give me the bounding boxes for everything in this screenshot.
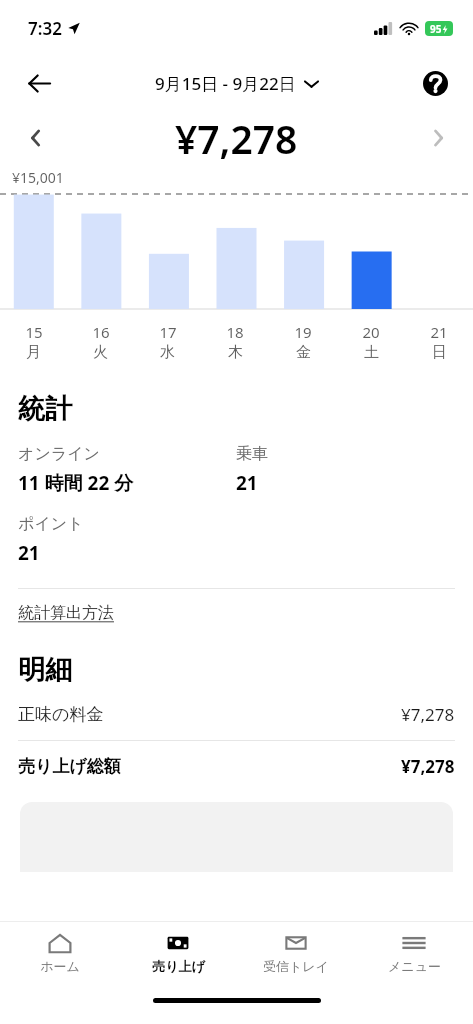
button[interactable]: 次の週 xyxy=(417,117,459,159)
staticText: 18 xyxy=(226,322,244,342)
staticText: 水 xyxy=(160,343,175,362)
staticText: 木 xyxy=(228,343,243,362)
button[interactable]: メニュー xyxy=(355,928,473,978)
staticText: 7:32 xyxy=(28,17,62,40)
staticText: 21 xyxy=(236,470,258,496)
staticText: 21 xyxy=(430,322,448,342)
staticText: 20 xyxy=(362,322,380,342)
button[interactable]: 統計算出方法 xyxy=(18,603,114,623)
button[interactable]: 戻る xyxy=(16,60,62,106)
button[interactable]: ホーム xyxy=(0,928,119,978)
staticText: ¥7,278 xyxy=(401,755,455,778)
staticText: 統計算出方法 xyxy=(18,603,114,623)
staticText: 売り上げ xyxy=(152,958,205,974)
staticText: ¥15,001 xyxy=(12,168,64,187)
staticText: 日 xyxy=(432,343,447,362)
staticText: 95 xyxy=(430,22,442,36)
button[interactable]: ヘルプ xyxy=(415,63,455,103)
staticText: オンライン xyxy=(18,444,100,464)
button[interactable]: 正味の料金 xyxy=(18,703,455,726)
staticText: 9月15日 - 9月22日 xyxy=(155,72,296,95)
staticText: ¥7,278 xyxy=(401,703,455,726)
staticText: 受信トレイ xyxy=(263,958,329,974)
staticText: 17 xyxy=(159,322,177,342)
staticText: 15 xyxy=(25,322,43,342)
staticText: ポイント xyxy=(18,514,84,534)
staticText: 土 xyxy=(364,343,379,362)
staticText: 11 時間 22 分 xyxy=(18,470,134,496)
staticText: ¥7,278 xyxy=(175,112,298,165)
staticText: 売り上げ総額 xyxy=(18,756,121,777)
staticText: 統計 xyxy=(18,392,72,426)
staticText: ホーム xyxy=(40,958,80,974)
button[interactable]: 売り上げ xyxy=(119,928,237,978)
staticText: 乗車 xyxy=(236,444,268,464)
button[interactable]: 受信トレイ xyxy=(237,928,355,978)
button[interactable]: 前の週 xyxy=(14,117,56,159)
button[interactable]: 9月15日 - 9月22日 xyxy=(155,72,318,95)
staticText: 金 xyxy=(296,343,311,362)
staticText: 19 xyxy=(294,322,312,342)
staticText: 火 xyxy=(93,343,108,362)
staticText: 正味の料金 xyxy=(18,704,104,725)
staticText: 月 xyxy=(26,343,41,362)
staticText: 明細 xyxy=(18,653,72,687)
staticText: 21 xyxy=(18,540,40,566)
staticText: 16 xyxy=(92,322,110,342)
staticText: メニュー xyxy=(388,958,441,974)
